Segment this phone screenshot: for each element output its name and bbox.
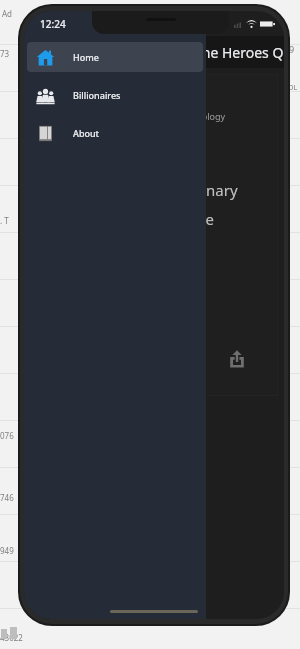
staticText: Ad [2,8,13,19]
staticText: The Heroes Quotes [194,43,284,62]
button[interactable]: About [27,118,203,148]
staticText: 076 [0,430,14,441]
staticText: 73 [0,48,10,59]
staticText: OL [288,83,298,93]
staticText: 43022 [0,632,23,643]
button[interactable]: Billionaires [27,80,203,110]
staticText: Home [73,51,99,63]
staticText: technology [178,110,226,122]
staticText: About [73,127,100,139]
staticText: ordinary [178,180,238,200]
staticText: 949 [0,545,14,556]
staticText: 746 [0,492,14,503]
button[interactable]: Share [224,346,250,372]
button[interactable]: Home [27,42,203,72]
staticText: 12:24 [40,17,66,31]
staticText: 9 [289,43,295,55]
staticText: to be [178,209,215,229]
staticText: Billionaires [73,89,121,101]
staticText: . T [0,215,9,226]
